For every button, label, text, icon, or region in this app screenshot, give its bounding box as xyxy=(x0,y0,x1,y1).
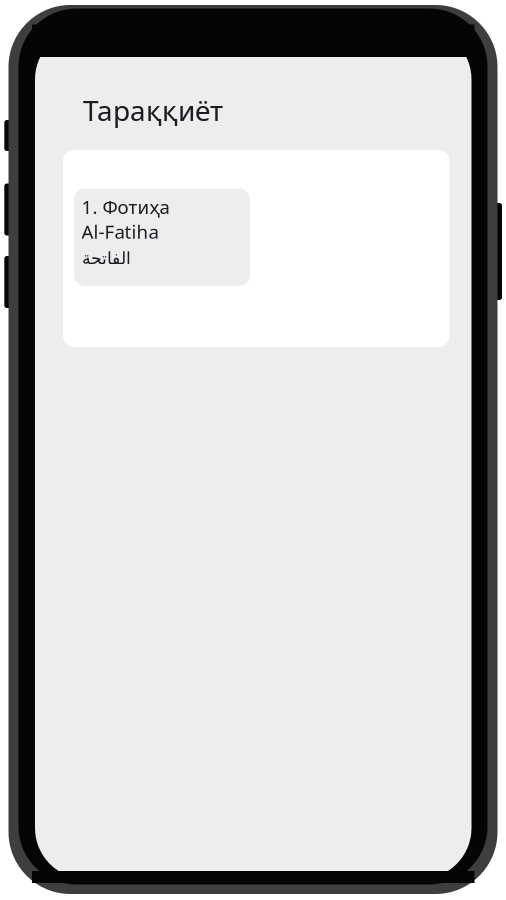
button[interactable]: 1. Фотиҳа xyxy=(74,188,250,286)
staticText: Al-Fatiha xyxy=(81,219,158,244)
staticText: 1. Фотиҳа xyxy=(81,194,169,219)
staticText: Тараққиёт xyxy=(83,91,223,129)
staticText: الفاتحة xyxy=(81,248,130,268)
